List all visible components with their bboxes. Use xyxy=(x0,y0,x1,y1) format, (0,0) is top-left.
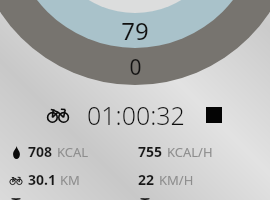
button[interactable]: 0 xyxy=(138,198,270,200)
button[interactable]: 708 xyxy=(0,142,138,161)
staticText: KM xyxy=(60,171,80,189)
button[interactable]: 0 xyxy=(0,198,138,200)
staticText: 22 xyxy=(138,170,155,189)
staticText: KCAL xyxy=(57,143,89,161)
staticText: 01:00:32 xyxy=(87,98,185,132)
staticText: DURCHSCHN. HR xyxy=(170,198,270,200)
staticText: 30.1 xyxy=(28,170,56,189)
staticText: KCAL/H xyxy=(167,143,213,161)
staticText: 708 xyxy=(28,142,53,161)
button[interactable]: Cycling activity xyxy=(43,102,73,128)
staticText: 79 xyxy=(121,14,149,47)
button[interactable]: 30.1 xyxy=(0,170,138,189)
button[interactable]: Stop workout xyxy=(201,102,227,128)
staticText: 755 xyxy=(138,142,163,161)
button[interactable]: 755 xyxy=(138,142,270,161)
staticText: 0 xyxy=(129,53,142,82)
staticText: KM/H xyxy=(159,171,194,189)
button[interactable]: 22 xyxy=(138,170,270,189)
